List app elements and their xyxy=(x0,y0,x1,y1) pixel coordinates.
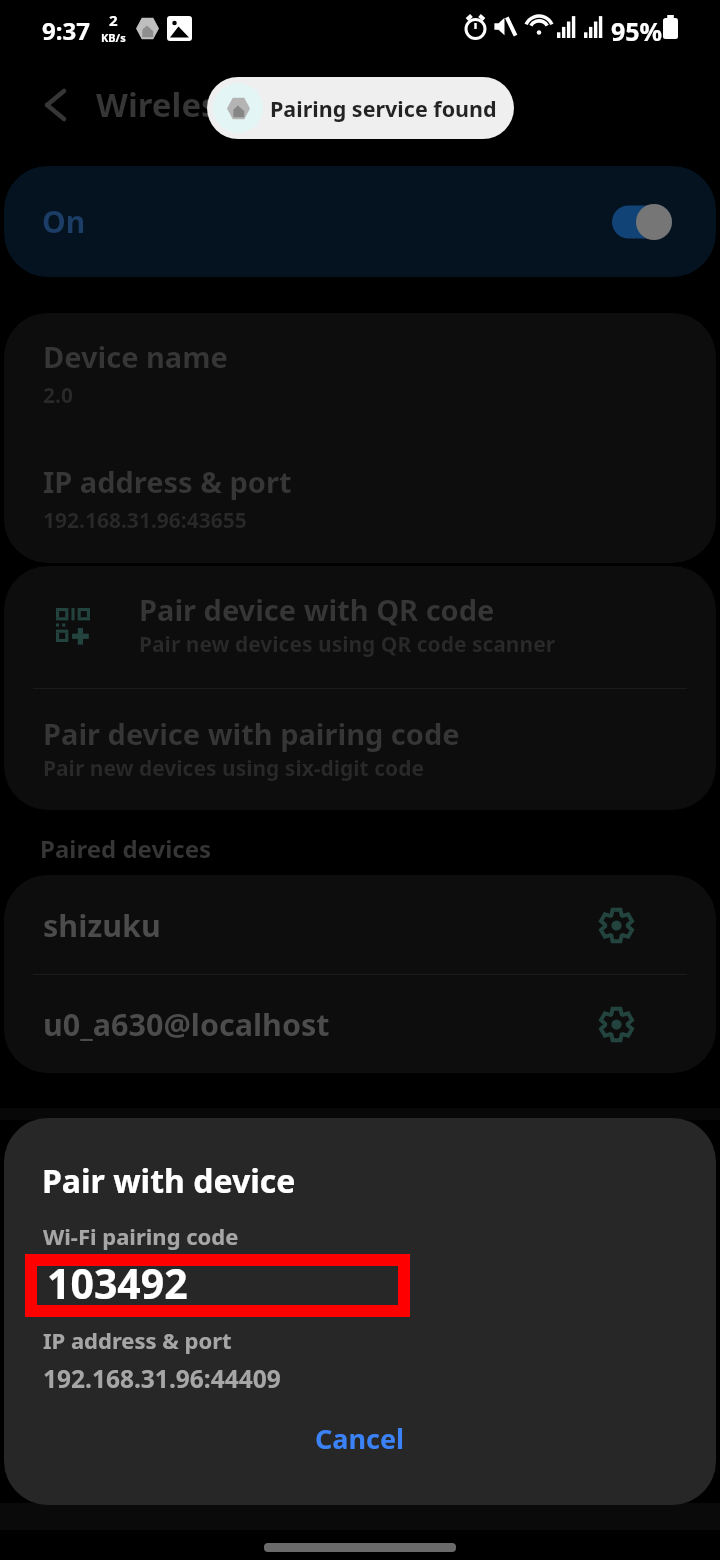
staticText: u0_a630@localhost xyxy=(43,1003,330,1045)
button[interactable]: IP address & port xyxy=(4,438,716,563)
button[interactable]: Device settings xyxy=(590,998,642,1050)
staticText: Pair with device xyxy=(42,1159,296,1203)
staticText: KB/s xyxy=(101,30,126,45)
staticText: 2.0 xyxy=(43,381,73,410)
staticText: Pair device with QR code xyxy=(139,590,495,629)
staticText: Wireless debugging xyxy=(96,82,420,127)
staticText: 2 xyxy=(109,10,118,30)
staticText: 9:37 xyxy=(42,14,90,47)
staticText: Cancel xyxy=(315,1420,405,1457)
staticText: IP address & port xyxy=(43,1325,232,1355)
staticText: IP address & port xyxy=(43,462,292,501)
button[interactable]: Pair device with QR code xyxy=(4,566,716,688)
button[interactable]: Pair device with pairing code xyxy=(4,688,716,810)
button[interactable]: On xyxy=(4,166,716,277)
button[interactable]: shizuku xyxy=(4,875,716,974)
staticText: 192.168.31.96:44409 xyxy=(43,1362,281,1395)
button[interactable]: u0_a630@localhost xyxy=(4,974,716,1073)
staticText: 95% xyxy=(611,14,663,48)
button[interactable]: Device settings xyxy=(590,899,642,951)
staticText: On xyxy=(42,201,86,242)
staticText: Pair new devices using QR code scanner xyxy=(139,630,556,659)
staticText: 103492 xyxy=(47,1255,188,1311)
staticText: Pair new devices using six-digit code xyxy=(43,754,424,783)
button[interactable]: Cancel xyxy=(285,1408,435,1469)
staticText: Pair device with pairing code xyxy=(43,714,460,753)
staticText: shizuku xyxy=(43,904,161,946)
staticText: 192.168.31.96:43655 xyxy=(43,506,247,535)
staticText: Paired devices xyxy=(40,832,212,865)
button[interactable]: Back xyxy=(28,78,82,132)
button[interactable]: Device name xyxy=(4,313,716,438)
staticText: Wi-Fi pairing code xyxy=(43,1221,239,1251)
button[interactable]: Pairing service found xyxy=(207,77,514,139)
staticText: Pairing service found xyxy=(270,94,497,123)
staticText: Device name xyxy=(43,337,228,376)
